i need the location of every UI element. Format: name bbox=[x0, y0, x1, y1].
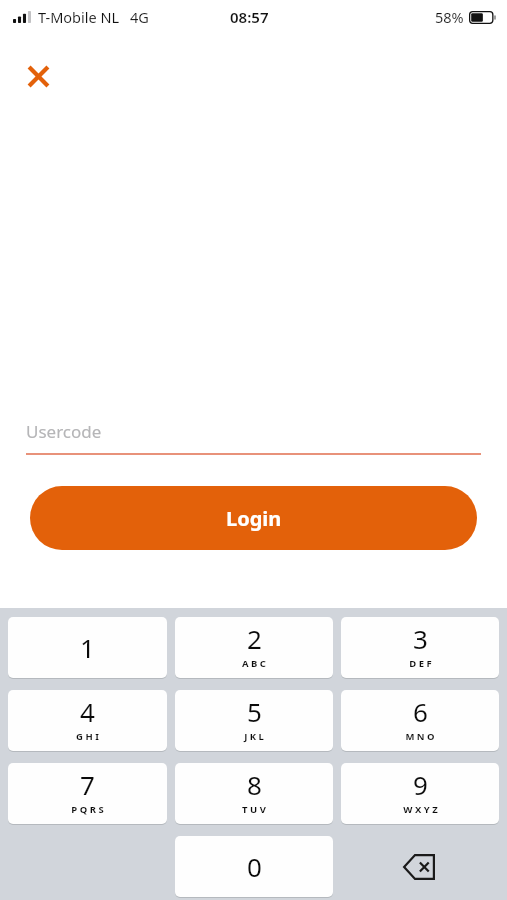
button[interactable]: Backspace bbox=[341, 836, 499, 897]
staticText: 7 bbox=[80, 767, 95, 802]
button[interactable]: Close bbox=[12, 50, 64, 102]
staticText: A B C bbox=[242, 657, 266, 670]
staticText: 5 bbox=[247, 694, 262, 729]
staticText: 08:57 bbox=[230, 7, 269, 27]
staticText: P Q R S bbox=[71, 803, 104, 816]
button[interactable]: 4 bbox=[8, 690, 167, 751]
button[interactable]: 8 bbox=[175, 763, 333, 824]
staticText: 9 bbox=[413, 767, 428, 802]
button[interactable]: 6 bbox=[341, 690, 499, 751]
staticText: 58% bbox=[435, 7, 464, 27]
button[interactable]: 1 bbox=[8, 617, 167, 678]
button[interactable]: 0 bbox=[175, 836, 333, 897]
button[interactable]: 9 bbox=[341, 763, 499, 824]
button[interactable]: Login bbox=[30, 486, 477, 550]
button[interactable]: 7 bbox=[8, 763, 167, 824]
button[interactable]: 5 bbox=[175, 690, 333, 751]
staticText: 2 bbox=[247, 621, 262, 656]
staticText: 0 bbox=[247, 849, 262, 884]
button[interactable]: Usercode bbox=[26, 420, 481, 455]
staticText: Usercode bbox=[26, 420, 102, 443]
staticText: W X Y Z bbox=[403, 803, 438, 816]
staticText: 6 bbox=[413, 694, 428, 729]
staticText: 4G bbox=[130, 7, 149, 27]
staticText: 1 bbox=[80, 630, 95, 665]
staticText: 4 bbox=[80, 694, 95, 729]
staticText: 8 bbox=[247, 767, 262, 802]
staticText: 3 bbox=[413, 621, 428, 656]
staticText: T U V bbox=[242, 803, 266, 816]
staticText: G H I bbox=[76, 730, 99, 743]
staticText: M N O bbox=[405, 730, 435, 743]
staticText: T-Mobile NL bbox=[38, 7, 120, 27]
button[interactable]: 2 bbox=[175, 617, 333, 678]
button[interactable]: 3 bbox=[341, 617, 499, 678]
staticText: J K L bbox=[244, 730, 264, 743]
staticText: Login bbox=[226, 505, 282, 532]
staticText: D E F bbox=[409, 657, 432, 670]
